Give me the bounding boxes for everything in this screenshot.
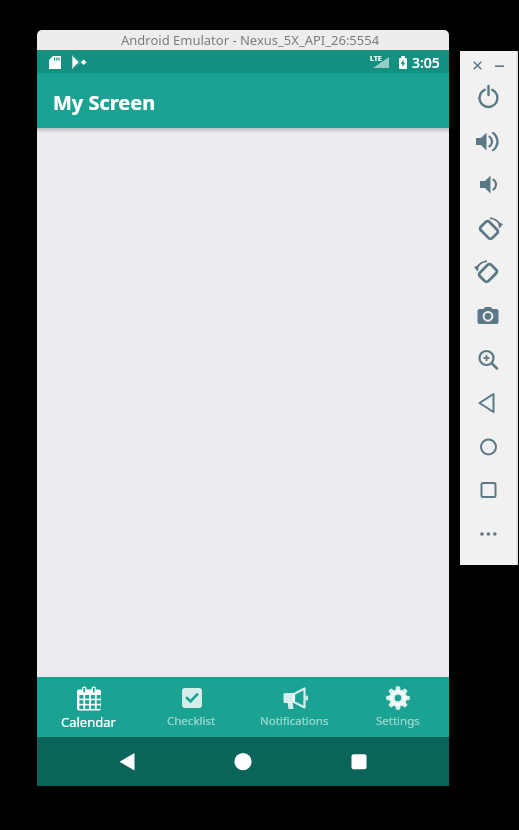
button[interactable] xyxy=(474,83,503,112)
button[interactable] xyxy=(474,301,503,330)
button[interactable] xyxy=(106,747,148,776)
button[interactable] xyxy=(474,519,503,548)
button[interactable]: Calendar xyxy=(37,677,140,737)
button[interactable] xyxy=(474,388,503,417)
staticText: Settings xyxy=(376,713,420,729)
button[interactable] xyxy=(474,432,503,461)
button[interactable] xyxy=(491,57,508,74)
button[interactable] xyxy=(474,345,503,374)
button[interactable] xyxy=(474,257,503,286)
button[interactable]: Notifications xyxy=(243,677,346,737)
button[interactable]: Settings xyxy=(346,677,449,737)
button[interactable] xyxy=(469,57,486,74)
button[interactable]: Checklist xyxy=(140,677,243,737)
button[interactable] xyxy=(474,170,503,199)
staticText: Notifications xyxy=(260,713,329,729)
button[interactable] xyxy=(222,747,264,776)
button[interactable] xyxy=(338,747,380,776)
staticText: 3:05 xyxy=(412,53,440,72)
staticText: Android Emulator - Nexus_5X_API_26:5554 xyxy=(121,31,380,49)
button[interactable] xyxy=(474,127,503,156)
staticText: LTE xyxy=(370,54,382,64)
staticText: Checklist xyxy=(167,713,216,729)
staticText: My Screen xyxy=(53,89,156,116)
staticText: Calendar xyxy=(61,713,116,731)
button[interactable] xyxy=(474,475,503,504)
button[interactable] xyxy=(474,214,503,243)
